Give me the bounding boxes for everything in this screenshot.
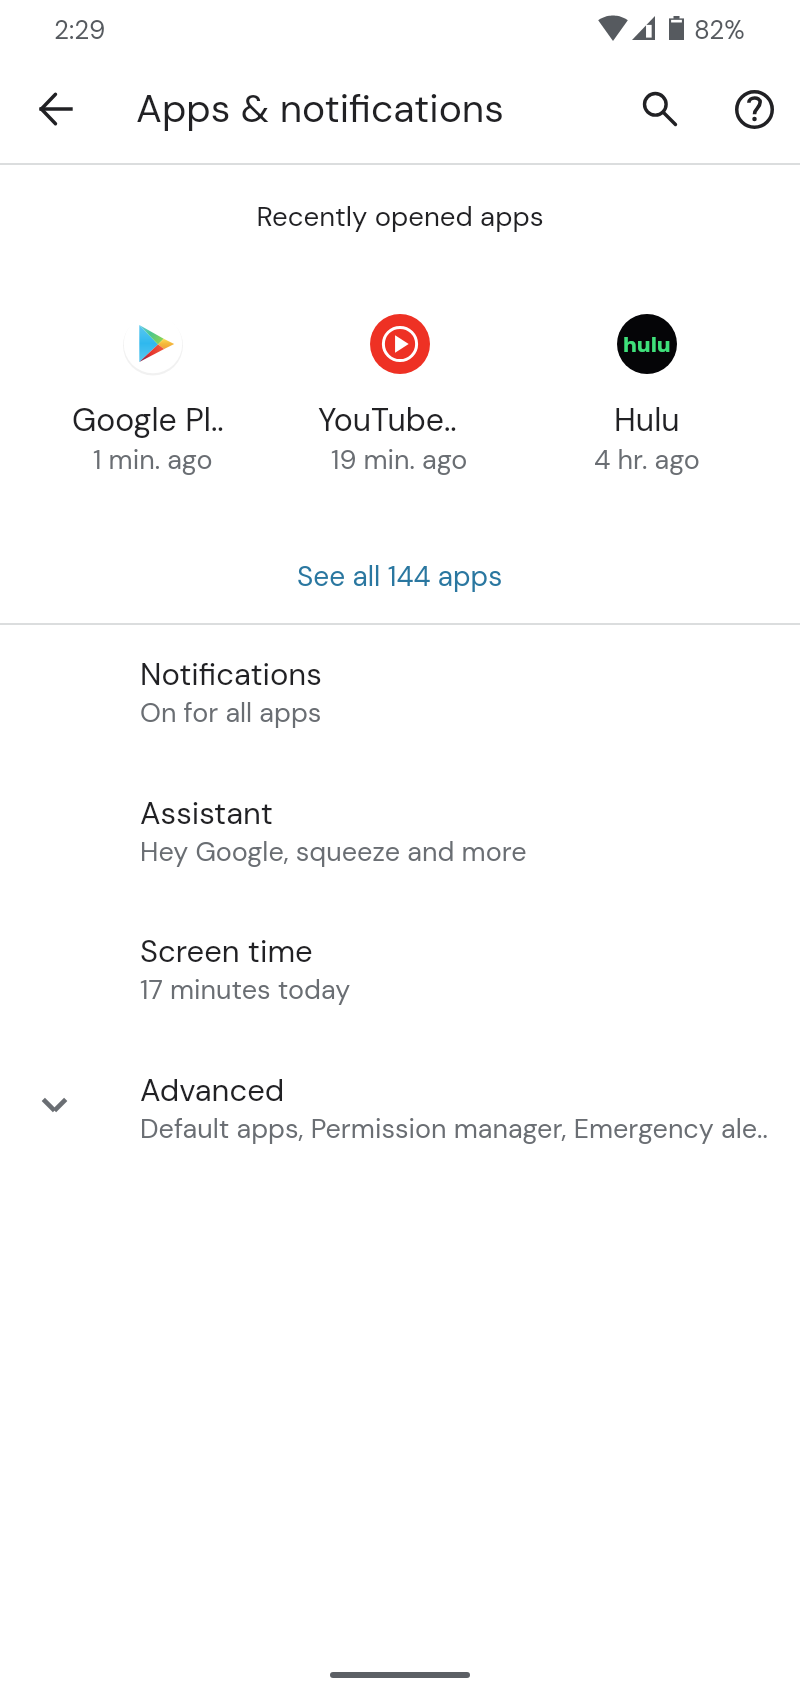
staticText: 19 min. ago [331, 442, 468, 477]
staticText: 2:29 [54, 13, 106, 47]
staticText: Recently opened apps [0, 199, 800, 235]
button[interactable]: Help [722, 77, 786, 141]
button[interactable]: Assistant [0, 773, 800, 911]
staticText: Screen time [140, 931, 313, 971]
button[interactable]: Google Pl.. [30, 314, 276, 477]
staticText: Notifications [140, 654, 322, 694]
staticText: 1 min. ago [93, 442, 213, 477]
button[interactable]: Notifications [0, 634, 800, 772]
button[interactable]: Search [628, 77, 692, 141]
button[interactable]: See all 144 apps [0, 548, 800, 604]
button[interactable]: Advanced [0, 1050, 800, 1188]
staticText: Default apps, Permission manager, Emerge… [140, 1111, 768, 1146]
button[interactable]: Screen time [0, 911, 800, 1049]
staticText: 17 minutes today [140, 972, 351, 1007]
button[interactable]: Back [23, 77, 87, 141]
staticText: Assistant [140, 793, 273, 833]
staticText: Hulu [614, 399, 680, 441]
staticText: hulu [623, 330, 671, 359]
staticText: See all 144 apps [297, 558, 503, 594]
staticText: Hey Google, squeeze and more [140, 834, 527, 869]
staticText: Advanced [140, 1070, 285, 1110]
staticText: YouTube.. [318, 399, 457, 441]
staticText: Google Pl.. [72, 399, 224, 441]
staticText: On for all apps [140, 695, 322, 730]
button[interactable]: hulu [523, 314, 770, 477]
staticText: 82% [694, 13, 745, 47]
button[interactable]: YouTube.. [276, 314, 523, 477]
staticText: Apps & notifications [136, 83, 504, 134]
staticText: 4 hr. ago [594, 442, 700, 477]
